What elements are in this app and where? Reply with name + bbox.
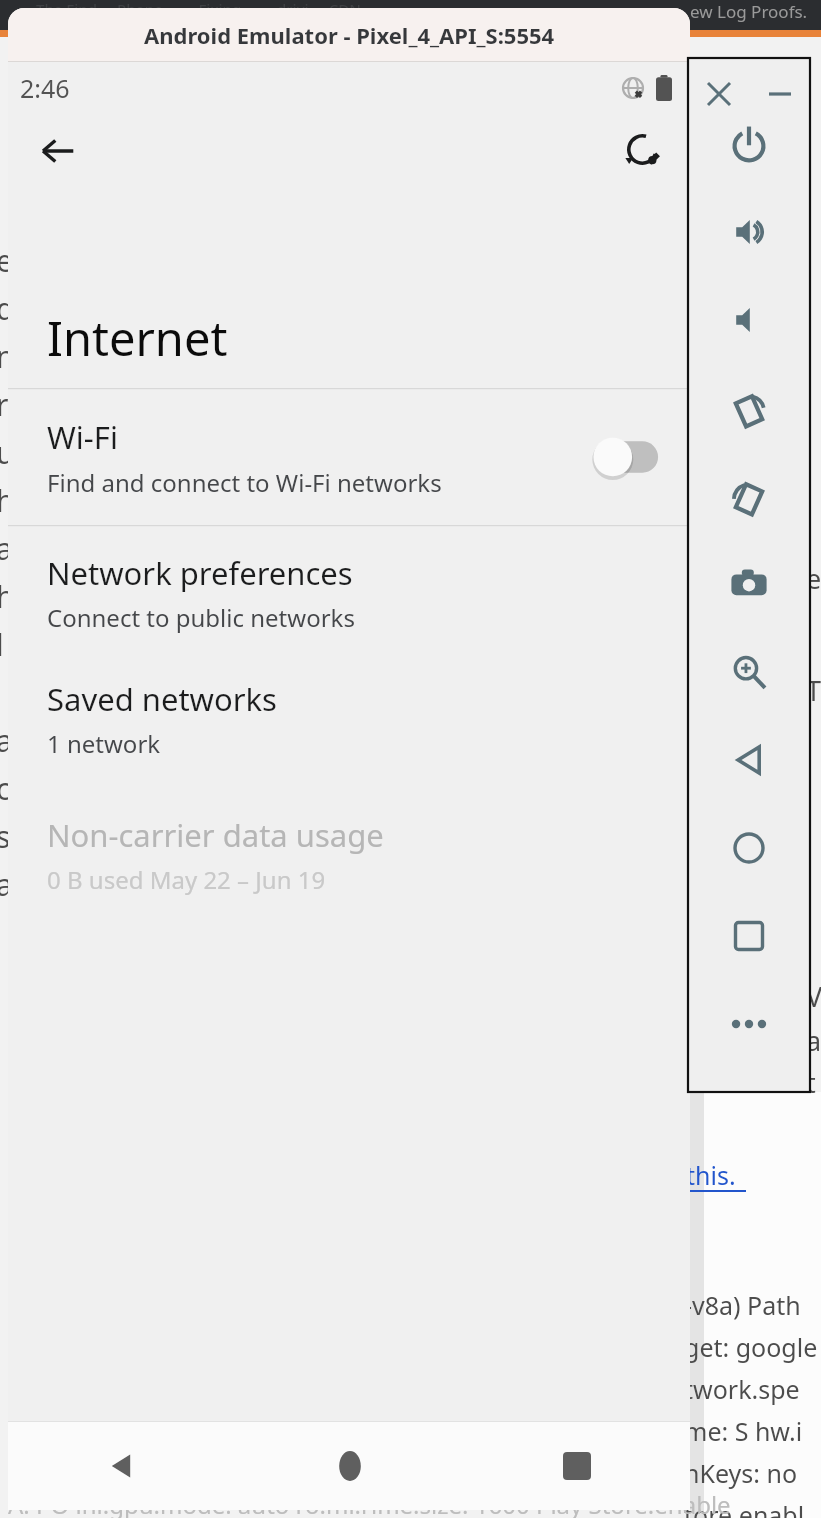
button[interactable]: Rotate right [688,452,810,540]
staticText: r [0,384,9,432]
button[interactable]: Take screenshot [688,540,810,628]
button[interactable]: Rotate left [688,364,810,452]
button[interactable]: Home [688,804,810,892]
staticText: T [806,672,821,709]
button[interactable]: Recent apps [463,1422,690,1510]
staticText: 2:46 [20,71,70,105]
staticText: e [0,240,13,288]
staticText: nKeys: no [684,1456,798,1490]
button[interactable]: More [688,980,810,1068]
staticText: a [0,528,13,576]
button[interactable]: Reset connectivity [614,121,674,181]
staticText: s [0,816,11,864]
button[interactable]: Wi-Fi [8,389,690,525]
staticText: A: PO ini.gpu.mode: auto ro.mi.rime.size… [8,1488,731,1518]
staticText: h [0,576,15,624]
staticText: a [0,720,13,768]
staticText: Saved networks [47,678,277,720]
staticText: e [806,560,821,597]
staticText: 1 network [47,727,161,760]
button[interactable]: Minimize emulator [749,58,810,130]
staticText: ew Log Proofs. [690,0,808,23]
button[interactable]: Volume down [688,276,810,364]
button[interactable]: Power [688,100,810,188]
staticText: me: S hw.i [684,1414,803,1448]
button[interactable]: Back [28,121,88,181]
button[interactable]: Close emulator [688,58,749,130]
staticText: u [0,432,15,480]
staticText: this. [686,1158,736,1192]
button[interactable]: Network preferences [8,544,690,642]
button[interactable]: Volume up [688,188,810,276]
staticText: a [806,1022,821,1059]
staticText: The Find··· Phone··· Fixing ··· drivi···… [36,0,374,19]
staticText: Non-carrier data usage [47,814,384,856]
staticText: V [806,978,821,1015]
button[interactable]: Zoom [688,628,810,716]
button[interactable] [590,434,664,480]
button[interactable]: Back [688,716,810,804]
staticText: tore.enabl [684,1498,805,1518]
staticText: get: google [684,1330,818,1364]
staticText: Wi-Fi [47,416,118,458]
staticText: d [0,288,15,336]
button[interactable]: Saved networks [8,670,690,768]
staticText: l [0,624,4,672]
button[interactable]: Back [8,1422,236,1510]
staticText: n [0,336,15,384]
staticText: h [0,480,15,528]
staticText: Find and connect to Wi-Fi networks [47,466,442,499]
staticText: Internet [47,306,228,370]
button[interactable]: Home [236,1422,463,1510]
staticText: a [0,864,13,912]
staticText: t [806,1064,816,1101]
staticText: -v8a) Path [684,1288,801,1322]
staticText: Network preferences [47,552,353,594]
staticText: twork.spe [684,1372,800,1406]
button: Non-carrier data usage [8,806,690,904]
button[interactable]: Recent apps [688,892,810,980]
staticText: c [0,768,11,816]
staticText: Android Emulator - Pixel_4_API_S:5554 [144,20,555,50]
staticText: Connect to public networks [47,601,355,634]
staticText: 0 B used May 22 – Jun 19 [47,863,326,896]
